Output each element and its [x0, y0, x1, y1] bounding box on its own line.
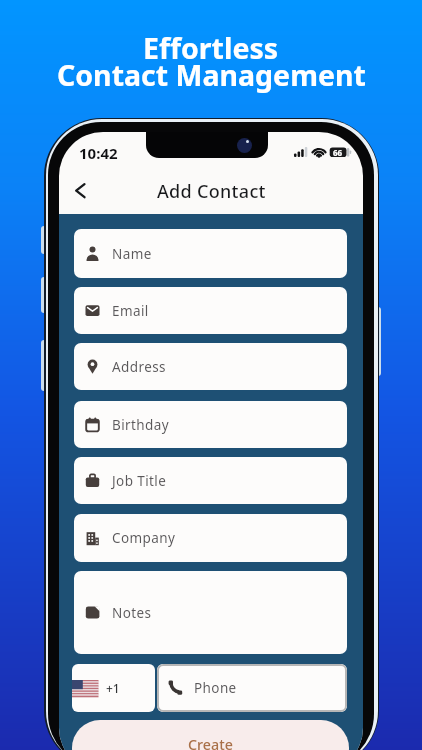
staticText: +1 — [106, 680, 120, 696]
staticText: Address — [112, 358, 166, 376]
staticText: 66 — [333, 147, 343, 158]
button[interactable]: Phone — [157, 664, 347, 712]
staticText: Job Title — [112, 472, 167, 490]
staticText: Effortless — [143, 29, 279, 68]
staticText: Create — [188, 735, 233, 750]
button[interactable]: Address — [74, 343, 347, 390]
button[interactable] — [74, 183, 87, 199]
button[interactable]: Company — [74, 514, 347, 562]
staticText: Notes — [112, 604, 152, 622]
staticText: Contact Management — [57, 56, 366, 95]
button[interactable]: Create — [72, 720, 349, 750]
staticText: Name — [112, 245, 152, 263]
button[interactable]: Name — [74, 229, 347, 278]
staticText: Birthday — [112, 416, 170, 434]
staticText: Company — [112, 529, 176, 547]
staticText: 10:42 — [79, 143, 118, 163]
button[interactable]: Notes — [74, 571, 347, 654]
button[interactable]: Job Title — [74, 457, 347, 504]
staticText: Email — [112, 302, 149, 320]
button[interactable]: +1 — [72, 664, 155, 712]
button[interactable]: Birthday — [74, 401, 347, 448]
button[interactable]: Email — [74, 287, 347, 334]
staticText: Phone — [194, 679, 237, 697]
staticText: Add Contact — [157, 179, 266, 204]
